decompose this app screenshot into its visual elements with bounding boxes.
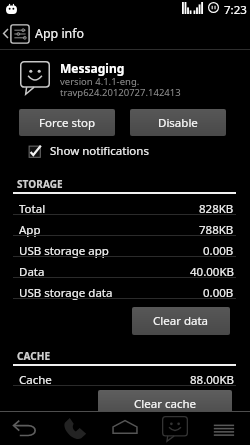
button[interactable]: Clear cache — [98, 390, 232, 418]
staticText: Cache — [19, 372, 52, 388]
button[interactable]: Force stop — [19, 109, 115, 136]
staticText: Messaging — [60, 60, 125, 76]
staticText: 40.00KB — [190, 264, 234, 280]
staticText: STORAGE — [17, 177, 63, 191]
staticText: Total — [19, 201, 46, 217]
button[interactable]: Recent apps — [200, 412, 250, 445]
button[interactable]: Show notifications — [25, 141, 149, 160]
button[interactable]: Home — [100, 412, 150, 445]
staticText: App info — [35, 25, 84, 42]
button[interactable]: USB storage app — [0, 236, 250, 257]
staticText: Clear data — [153, 313, 209, 329]
staticText: 0.00B — [203, 285, 234, 301]
staticText: version 4.1.1-eng. — [60, 75, 140, 88]
staticText: Force stop — [39, 115, 96, 131]
button[interactable]: Messaging — [150, 412, 200, 445]
staticText: Data — [19, 264, 45, 280]
button[interactable]: Cache — [0, 365, 250, 386]
staticText: 0.00B — [203, 243, 234, 259]
staticText: App — [19, 222, 41, 238]
button[interactable]: App — [0, 215, 250, 236]
button[interactable]: Phone — [50, 412, 100, 445]
staticText: 7:23 — [224, 2, 247, 18]
staticText: Clear cache — [134, 396, 196, 412]
staticText: Show notifications — [50, 143, 149, 159]
button[interactable]: Back — [0, 412, 50, 445]
staticText: USB storage app — [19, 243, 109, 259]
staticText: CACHE — [17, 349, 51, 363]
button[interactable]: Data — [0, 257, 250, 278]
button[interactable]: Total — [0, 194, 250, 215]
staticText: Disable — [158, 115, 198, 131]
staticText: travp624.20120727.142413 — [60, 86, 181, 99]
button[interactable]: USB storage data — [0, 278, 250, 299]
button[interactable]: Disable — [130, 109, 226, 136]
button[interactable]: Clear data — [132, 307, 230, 335]
staticText: 788KB — [199, 222, 234, 238]
staticText: 88.00KB — [190, 372, 234, 388]
staticText: 828KB — [199, 201, 234, 217]
button[interactable]: Up — [0, 17, 250, 50]
staticText: USB storage data — [19, 285, 113, 301]
